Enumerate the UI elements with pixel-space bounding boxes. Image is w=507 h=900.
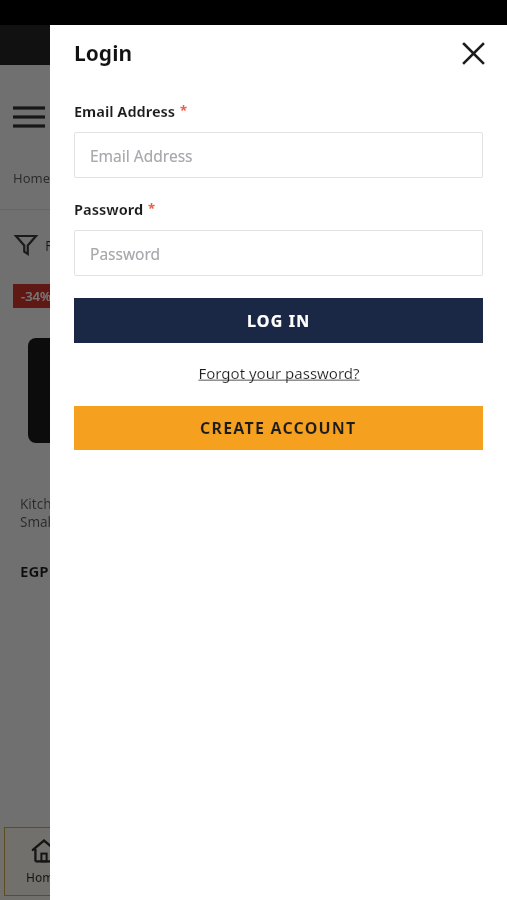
staticText: Home / Shop: [13, 169, 93, 187]
button[interactable]: Forgot your password?: [192, 357, 366, 389]
staticText: Login: [74, 39, 133, 68]
staticText: *: [148, 199, 156, 217]
button[interactable]: Email Address: [74, 132, 483, 178]
button[interactable]: Home: [4, 827, 82, 896]
staticText: -34%: [21, 287, 52, 305]
staticText: Home: [26, 869, 61, 885]
staticText: Kitchen Small Blender: [20, 495, 108, 531]
button[interactable]: Password: [74, 230, 483, 276]
staticText: Password: [74, 199, 144, 219]
staticText: EGP 1,299: [20, 561, 92, 581]
staticText: *: [180, 101, 188, 119]
staticText: Email Address: [90, 145, 193, 166]
button[interactable]: CREATE ACCOUNT: [74, 406, 483, 450]
staticText: Password: [90, 243, 161, 264]
button[interactable]: LOG IN: [74, 298, 483, 343]
staticText: Email Address: [74, 101, 176, 121]
staticText: LOG IN: [247, 310, 311, 332]
staticText: CREATE ACCOUNT: [200, 417, 357, 439]
button[interactable]: Close: [451, 31, 495, 75]
staticText: Forgot your password?: [198, 363, 360, 383]
staticText: Filter: [45, 236, 79, 255]
